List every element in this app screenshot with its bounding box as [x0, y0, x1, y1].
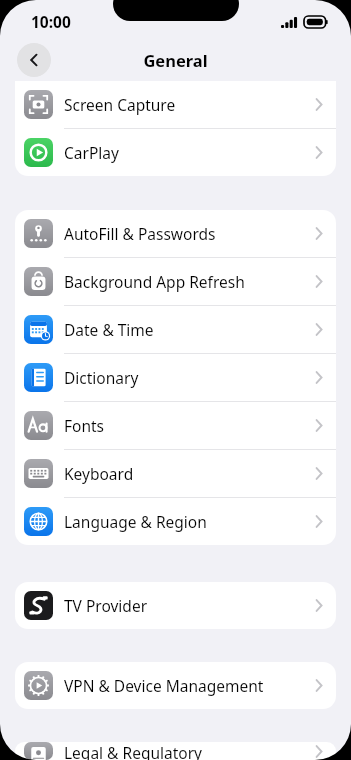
button[interactable]: Dictionary [15, 354, 336, 401]
staticText: Date & Time [64, 319, 315, 340]
button[interactable]: Date & Time [15, 306, 336, 353]
staticText: CarPlay [64, 142, 315, 163]
staticText: Screen Capture [64, 94, 315, 115]
staticText: 10:00 [31, 11, 71, 32]
button[interactable]: Keyboard [15, 450, 336, 497]
button[interactable]: TV Provider [15, 582, 336, 629]
staticText: Dictionary [64, 367, 315, 388]
staticText: Language & Region [64, 511, 315, 532]
staticText: Keyboard [64, 463, 315, 484]
button[interactable]: Back [17, 43, 51, 77]
button[interactable]: Legal & Regulatory [15, 742, 336, 760]
button[interactable]: CarPlay [15, 129, 336, 176]
staticText: AutoFill & Passwords [64, 223, 315, 244]
staticText: Legal & Regulatory [64, 742, 315, 760]
button[interactable]: AutoFill & Passwords [15, 210, 336, 257]
button[interactable]: Screen Capture [15, 81, 336, 128]
staticText: General [143, 49, 208, 71]
staticText: TV Provider [64, 595, 315, 616]
button[interactable]: VPN & Device Management [15, 662, 336, 709]
button[interactable]: Fonts [15, 402, 336, 449]
staticText: VPN & Device Management [64, 675, 315, 696]
staticText: Fonts [64, 415, 315, 436]
button[interactable]: Language & Region [15, 498, 336, 545]
staticText: Background App Refresh [64, 271, 315, 292]
button[interactable]: Background App Refresh [15, 258, 336, 305]
